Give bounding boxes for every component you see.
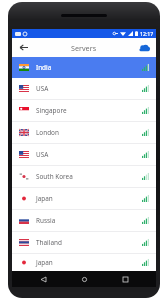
button[interactable]: South Korea	[12, 166, 156, 187]
staticText: Japan	[36, 258, 53, 267]
button[interactable]: Recents	[115, 271, 135, 287]
button[interactable]: Back	[33, 271, 53, 287]
button[interactable]: Russia	[12, 210, 156, 231]
staticText: 12:17	[140, 30, 154, 37]
button[interactable]: Home	[74, 271, 94, 287]
button[interactable]: Thailand	[12, 232, 156, 253]
staticText: Thailand	[36, 238, 62, 247]
staticText: South Korea	[36, 172, 73, 181]
staticText: Japan	[36, 194, 53, 203]
staticText: USA	[36, 84, 49, 93]
button[interactable]: India	[12, 57, 156, 78]
button[interactable]: London	[12, 122, 156, 143]
button[interactable]: Japan	[12, 188, 156, 209]
button[interactable]: Cloud	[137, 40, 152, 55]
staticText: Russia	[36, 216, 56, 225]
staticText: India	[36, 63, 52, 72]
button[interactable]: Japan	[12, 254, 156, 271]
button[interactable]: USA	[12, 78, 156, 99]
button[interactable]: Singapore	[12, 100, 156, 121]
button[interactable]: USA	[12, 144, 156, 165]
staticText: USA	[36, 150, 49, 159]
button[interactable]: Back	[16, 40, 31, 55]
staticText: Singapore	[36, 106, 67, 115]
staticText: London	[36, 128, 59, 137]
staticText: Servers	[71, 43, 97, 53]
